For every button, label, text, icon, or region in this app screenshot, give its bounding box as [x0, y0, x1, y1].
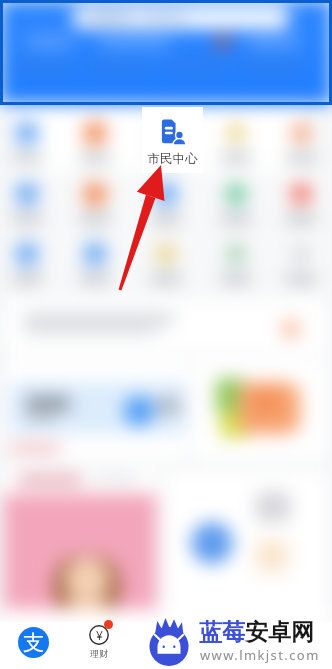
staticText: 支 [23, 630, 44, 656]
button[interactable]: ¥ [79, 625, 119, 659]
staticText: ¥ [96, 627, 103, 643]
staticText: 安卓网 [245, 618, 314, 647]
staticText: www.lmkjst.com [200, 646, 320, 664]
staticText: 市民中心 [142, 151, 203, 167]
staticText: 蓝莓 [199, 618, 245, 647]
staticText: 理财 [90, 648, 108, 659]
button[interactable]: 市民中心 [142, 107, 203, 173]
button[interactable]: 首页 [18, 627, 49, 658]
